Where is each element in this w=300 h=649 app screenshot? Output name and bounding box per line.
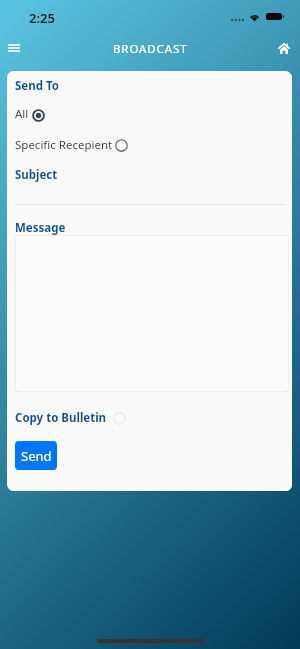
button[interactable]: Send: [15, 441, 57, 470]
staticText: Specific Recepient: [15, 137, 113, 153]
button[interactable]: Open navigation menu: [0, 32, 28, 66]
staticText: Send: [21, 447, 52, 465]
button[interactable]: Copy to Bulletin: [15, 410, 126, 426]
staticText: 2:25: [29, 9, 55, 27]
staticText: Message: [15, 220, 66, 236]
staticText: All: [15, 106, 29, 122]
button[interactable]: Home: [272, 32, 300, 66]
staticText: Send To: [15, 78, 59, 94]
button[interactable]: All: [15, 106, 45, 122]
staticText: BROADCAST: [113, 41, 188, 57]
staticText: Copy to Bulletin: [15, 410, 107, 426]
staticText: Subject: [15, 167, 58, 183]
button[interactable]: Specific Recepient: [15, 137, 128, 153]
